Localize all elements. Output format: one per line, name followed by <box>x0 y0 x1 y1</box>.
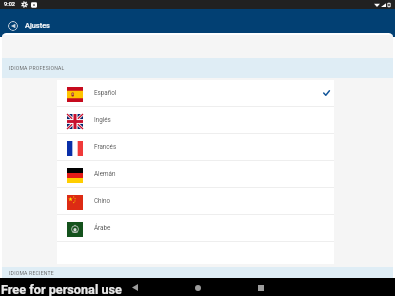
staticText: IDIOMA RECIENTE <box>9 270 54 276</box>
staticText: Inglés <box>94 116 111 123</box>
staticText: Ajustes <box>25 21 50 30</box>
button[interactable]: Recents <box>253 280 268 295</box>
staticText: Free for personal use <box>1 282 122 296</box>
staticText: Español <box>94 89 117 96</box>
button[interactable]: Back <box>127 280 142 295</box>
button[interactable]: Home <box>190 280 205 295</box>
staticText: IDIOMA PROFESIONAL <box>9 65 65 71</box>
button[interactable]: Back <box>8 21 18 31</box>
button[interactable]: Chino <box>57 188 334 214</box>
staticText: Árabe <box>94 224 111 231</box>
button[interactable]: Alemán <box>57 161 334 187</box>
button[interactable]: Francés <box>57 134 334 160</box>
button[interactable]: Español <box>57 80 334 106</box>
staticText: 9:02 <box>4 1 16 8</box>
staticText: Chino <box>94 197 111 204</box>
staticText: Francés <box>94 143 117 150</box>
button[interactable]: Inglés <box>57 107 334 133</box>
button[interactable]: Árabe <box>57 215 334 241</box>
staticText: Alemán <box>94 170 116 177</box>
